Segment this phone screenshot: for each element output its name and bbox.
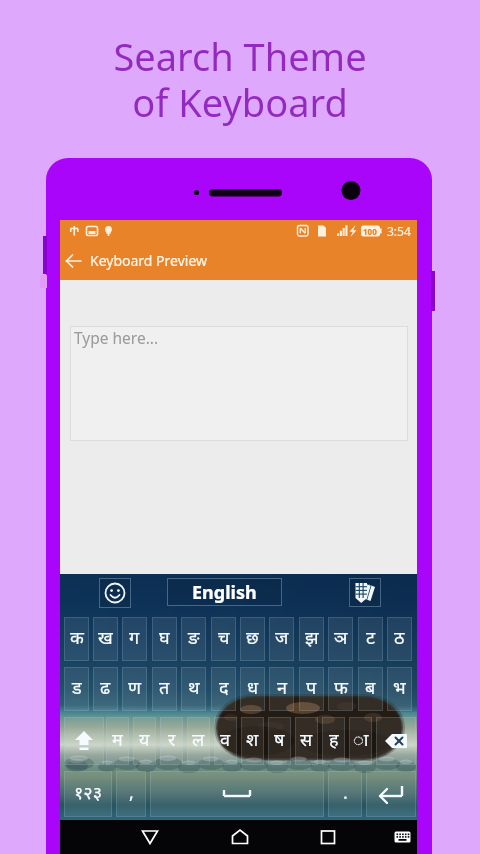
button[interactable]: त xyxy=(152,667,177,711)
staticText: १२३ xyxy=(74,780,103,805)
staticText: ज xyxy=(275,625,289,650)
staticText: म xyxy=(112,727,123,752)
button[interactable]: ब xyxy=(358,667,383,711)
button[interactable]: म xyxy=(106,717,129,765)
button[interactable]: . xyxy=(328,771,362,817)
staticText: स xyxy=(300,727,313,752)
staticText: द xyxy=(219,675,229,700)
button[interactable]: ग xyxy=(122,617,147,661)
staticText: छ xyxy=(246,625,259,650)
button[interactable]: English xyxy=(167,578,282,606)
button[interactable]: छ xyxy=(240,617,265,661)
staticText: थ xyxy=(188,675,200,700)
staticText: ध xyxy=(247,675,259,700)
button[interactable]: भ xyxy=(387,667,412,711)
staticText: ञ xyxy=(334,625,348,650)
staticText: ढ xyxy=(100,675,111,700)
staticText: ख xyxy=(98,625,113,650)
button[interactable]: य xyxy=(133,717,156,765)
button[interactable]: क xyxy=(64,617,89,661)
staticText: ट xyxy=(366,625,376,650)
button[interactable]: Back xyxy=(62,249,86,273)
staticText: ल xyxy=(192,727,205,752)
staticText: ग xyxy=(129,625,140,650)
button[interactable]: फ xyxy=(328,667,353,711)
button[interactable]: Keyboard xyxy=(387,825,417,849)
staticText: . xyxy=(343,780,348,805)
button[interactable]: ड xyxy=(64,667,89,711)
staticText: ण xyxy=(128,675,142,700)
button[interactable]: ा xyxy=(349,717,372,765)
staticText: न xyxy=(277,675,287,700)
staticText: ठ xyxy=(394,625,405,650)
button[interactable]: श xyxy=(241,717,264,765)
staticText: Type here... xyxy=(74,327,159,348)
button[interactable]: Recents xyxy=(310,825,346,849)
button[interactable]: ण xyxy=(122,667,147,711)
staticText: English xyxy=(192,580,257,605)
staticText: 3:54 xyxy=(387,223,411,239)
button[interactable]: झ xyxy=(299,617,324,661)
button[interactable]: न xyxy=(269,667,294,711)
staticText: ब xyxy=(365,675,376,700)
staticText: ड xyxy=(72,675,82,700)
button[interactable]: ङ xyxy=(181,617,206,661)
button[interactable]: Emoji xyxy=(99,578,131,608)
staticText: , xyxy=(129,780,134,805)
button[interactable]: थ xyxy=(181,667,206,711)
staticText: ङ xyxy=(188,625,200,650)
button[interactable]: Enter xyxy=(366,771,416,817)
button[interactable]: Shift xyxy=(64,717,104,765)
staticText: Keyboard Preview xyxy=(90,251,208,270)
staticText: प xyxy=(306,675,317,700)
button[interactable]: Theme xyxy=(349,578,381,607)
button[interactable]: ञ xyxy=(328,617,353,661)
staticText: Search Theme xyxy=(0,30,480,82)
button[interactable]: ल xyxy=(187,717,210,765)
button[interactable]: , xyxy=(116,771,146,817)
button[interactable]: ठ xyxy=(387,617,412,661)
staticText: घ xyxy=(159,625,170,650)
staticText: व xyxy=(220,727,231,752)
staticText: 100 xyxy=(363,226,377,237)
button[interactable]: Home xyxy=(222,825,258,849)
button[interactable]: द xyxy=(211,667,236,711)
button[interactable]: ट xyxy=(358,617,383,661)
button[interactable]: ढ xyxy=(93,667,118,711)
staticText: य xyxy=(139,727,150,752)
staticText: भ xyxy=(393,675,406,700)
button[interactable]: प xyxy=(299,667,324,711)
staticText: र xyxy=(168,727,176,752)
button[interactable]: ह xyxy=(322,717,345,765)
staticText: च xyxy=(218,625,230,650)
button[interactable]: Back xyxy=(132,825,168,849)
staticText: ा xyxy=(353,727,369,752)
button[interactable]: च xyxy=(211,617,236,661)
button[interactable]: ज xyxy=(269,617,294,661)
staticText: श xyxy=(246,727,259,752)
button[interactable]: स xyxy=(295,717,318,765)
staticText: झ xyxy=(305,625,319,650)
staticText: ह xyxy=(329,727,339,752)
button[interactable]: ध xyxy=(240,667,265,711)
button[interactable]: ष xyxy=(268,717,291,765)
button[interactable]: Backspace xyxy=(376,717,416,765)
button[interactable]: Space xyxy=(150,771,324,817)
button[interactable]: १२३ xyxy=(64,771,112,817)
staticText: क xyxy=(70,625,84,650)
button[interactable]: र xyxy=(160,717,183,765)
staticText: फ xyxy=(334,675,348,700)
button[interactable]: घ xyxy=(152,617,177,661)
button[interactable]: व xyxy=(214,717,237,765)
staticText: ष xyxy=(274,727,285,752)
staticText: of Keyboard xyxy=(0,76,480,128)
button[interactable]: ख xyxy=(93,617,118,661)
button[interactable]: Type here... xyxy=(70,326,408,441)
staticText: त xyxy=(159,675,170,700)
